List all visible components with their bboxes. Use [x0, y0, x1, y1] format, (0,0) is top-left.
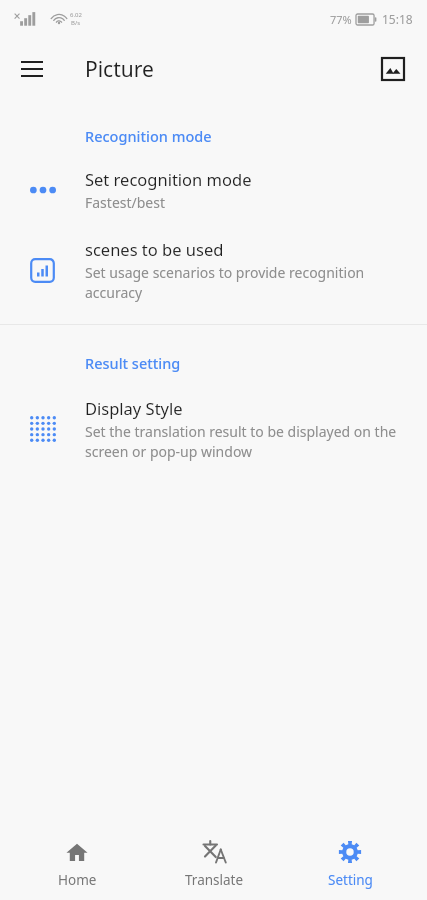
staticText: Fastest/best — [85, 193, 166, 212]
staticText: Set recognition mode — [85, 168, 252, 190]
staticText: Picture — [85, 55, 154, 84]
staticText: B/s — [71, 19, 81, 27]
staticText: 6.02 — [70, 11, 82, 19]
button[interactable]: Pick image — [371, 47, 415, 91]
staticText: Set the translation result to be display… — [85, 422, 403, 461]
staticText: scenes to be used — [85, 238, 224, 260]
staticText: Result setting — [85, 353, 181, 373]
staticText: Display Style — [85, 397, 183, 419]
button[interactable]: Setting — [290, 832, 410, 897]
button[interactable]: scenes to be used — [0, 238, 427, 302]
staticText: Home — [58, 871, 97, 889]
staticText: Set usage scenarios to provide recogniti… — [85, 263, 403, 302]
staticText: 15:18 — [382, 11, 413, 27]
staticText: Recognition mode — [85, 126, 212, 146]
button[interactable]: Set recognition mode — [0, 168, 427, 212]
staticText: Translate — [185, 871, 244, 889]
staticText: Setting — [328, 871, 373, 889]
staticText: 77% — [330, 12, 352, 27]
button[interactable]: Display Style — [0, 397, 427, 461]
button[interactable]: Open navigation menu — [10, 47, 54, 91]
button[interactable]: Translate — [154, 831, 274, 897]
button[interactable]: Home — [17, 832, 137, 897]
